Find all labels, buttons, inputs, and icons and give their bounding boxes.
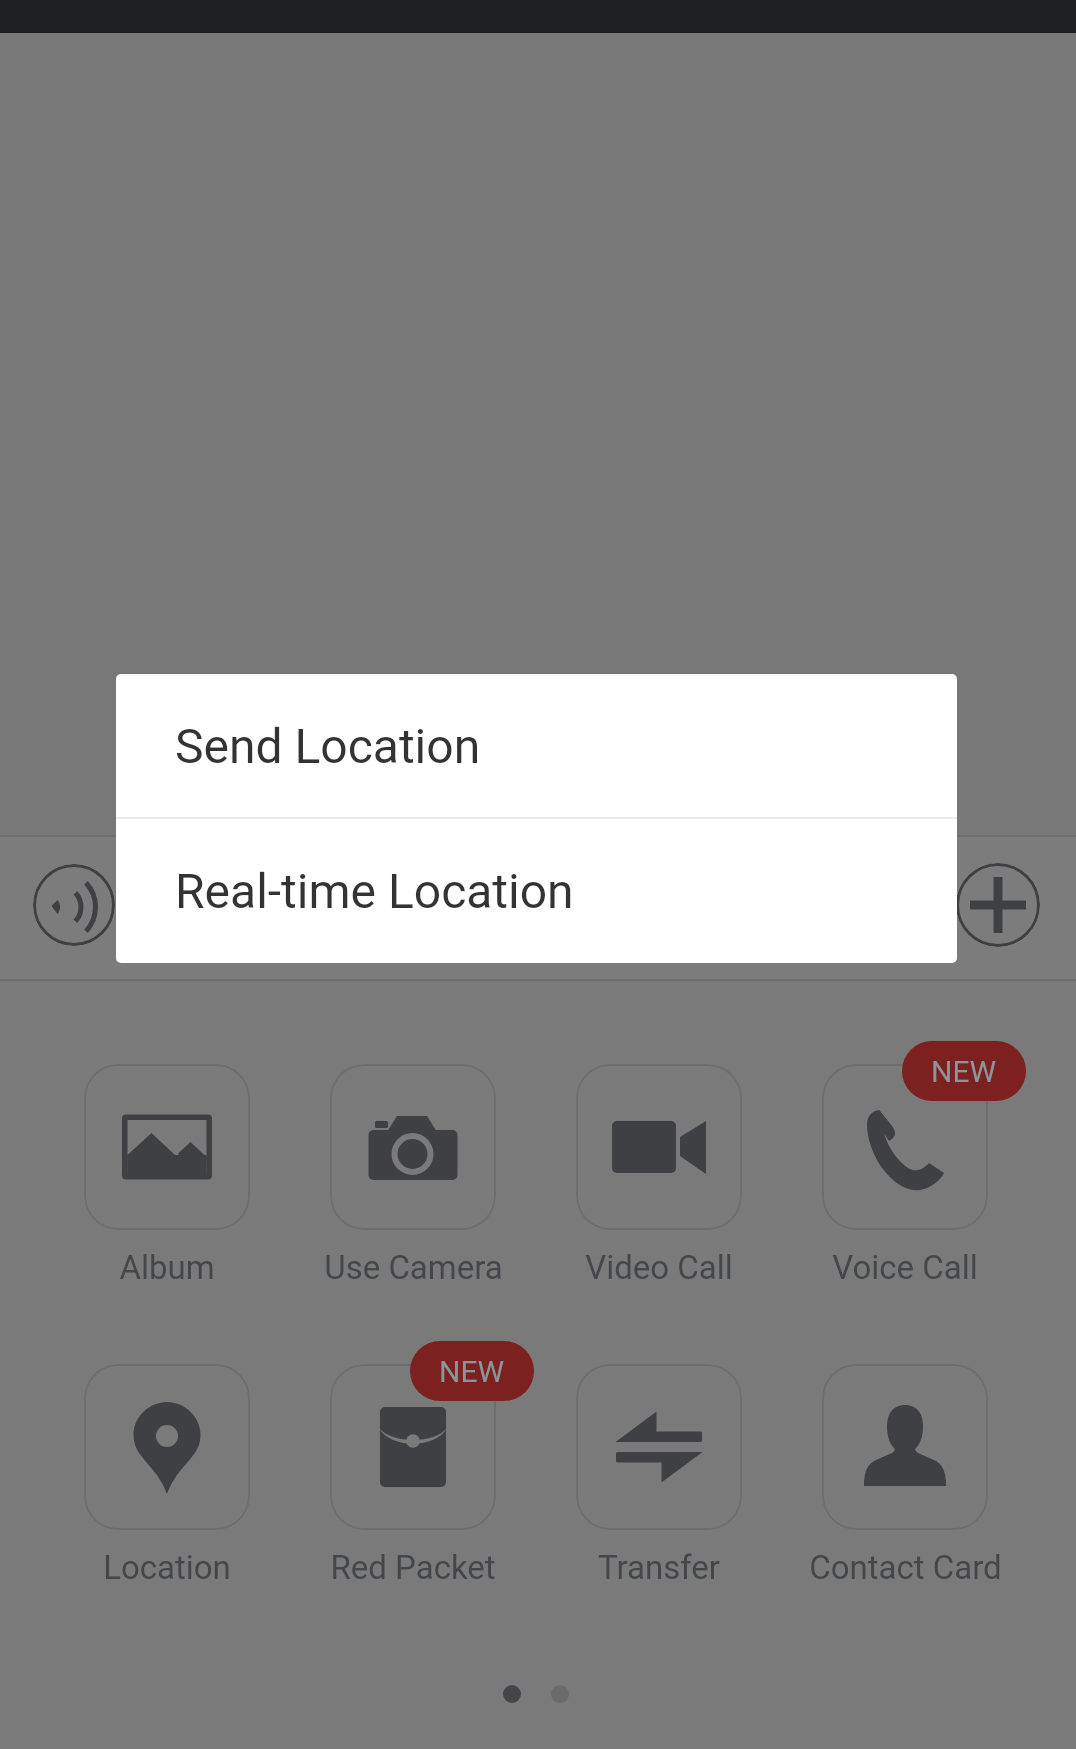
button[interactable]: Voice message	[33, 864, 115, 946]
staticText: Transfer	[598, 1548, 720, 1587]
staticText: Voice Call	[832, 1248, 978, 1287]
staticText: NEW	[931, 1054, 997, 1089]
staticText: Red Packet	[330, 1548, 496, 1587]
button[interactable]: Page 1	[503, 1685, 521, 1703]
button[interactable]: Use Camera	[330, 1064, 496, 1230]
staticText: Use Camera	[324, 1248, 503, 1287]
button[interactable]: Contact Card	[822, 1364, 988, 1530]
button[interactable]: Red Packet	[330, 1364, 496, 1530]
staticText: Video Call	[585, 1248, 733, 1287]
staticText: Real-time Location	[175, 863, 574, 919]
staticText: Send Location	[175, 718, 481, 774]
staticText: Location	[103, 1548, 231, 1587]
button[interactable]: Transfer	[576, 1364, 742, 1530]
button[interactable]: Video Call	[576, 1064, 742, 1230]
button[interactable]: Send Location	[116, 674, 957, 817]
button[interactable]: Album	[84, 1064, 250, 1230]
staticText: NEW	[439, 1354, 505, 1389]
button[interactable]: Location	[84, 1364, 250, 1530]
button[interactable]: Voice Call	[822, 1064, 988, 1230]
button[interactable]: Page 2	[551, 1685, 569, 1703]
staticText: Contact Card	[809, 1548, 1002, 1587]
staticText: Album	[119, 1248, 215, 1287]
button[interactable]: Real-time Location	[116, 819, 957, 963]
button[interactable]: More options	[956, 863, 1040, 947]
